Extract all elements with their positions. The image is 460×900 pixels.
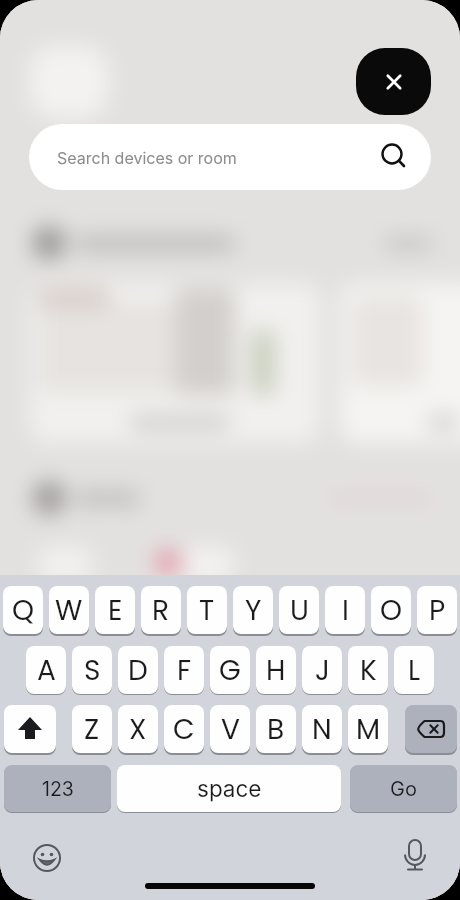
button[interactable] [405,705,457,753]
button[interactable]: Z [72,705,112,753]
button[interactable] [394,835,436,877]
staticText: T [199,591,215,630]
staticText: G [219,651,241,690]
button[interactable]: L [394,646,434,694]
staticText: 123 [42,777,74,801]
button[interactable]: Search devices or room [29,124,431,190]
button[interactable]: Go [350,765,457,812]
button[interactable]: 123 [4,765,111,812]
staticText: O [380,591,403,630]
button[interactable]: J [302,646,342,694]
button[interactable]: X [118,705,158,753]
staticText: H [266,651,286,690]
staticText: C [173,710,195,749]
button[interactable]: N [302,705,342,753]
button[interactable]: U [279,586,319,634]
button[interactable]: W [49,586,89,634]
staticText: R [152,591,170,630]
staticText: F [177,651,192,690]
button[interactable]: Y [233,586,273,634]
staticText: S [84,651,101,690]
button[interactable]: D [118,646,158,694]
staticText: Q [12,591,35,630]
staticText: A [37,651,56,690]
button[interactable]: K [348,646,388,694]
button[interactable]: T [187,586,227,634]
button[interactable]: G [210,646,250,694]
staticText: E [108,591,123,630]
button[interactable]: V [210,705,250,753]
button[interactable]: H [256,646,296,694]
button[interactable] [4,705,56,753]
staticText: V [221,710,240,749]
staticText: B [267,710,285,749]
staticText: Go [390,777,417,801]
staticText: N [312,710,332,749]
staticText: I [342,591,349,630]
staticText: M [356,710,381,749]
staticText: K [360,651,377,690]
button[interactable]: O [371,586,411,634]
button[interactable]: space [117,765,341,812]
staticText: U [290,591,309,630]
button[interactable]: F [164,646,204,694]
button[interactable]: A [26,646,66,694]
staticText: P [429,591,446,630]
staticText: W [55,591,83,630]
staticText: X [129,710,147,749]
staticText: space [197,775,262,802]
button[interactable]: S [72,646,112,694]
button[interactable]: I [325,586,365,634]
button[interactable] [26,837,68,879]
button[interactable]: C [164,705,204,753]
button[interactable] [356,48,431,115]
button[interactable]: Q [3,586,43,634]
staticText: Z [84,710,100,749]
button[interactable]: M [348,705,388,753]
button[interactable]: R [141,586,181,634]
staticText: L [408,651,421,690]
staticText: Y [245,591,262,630]
staticText: J [315,651,330,690]
button[interactable]: P [417,586,457,634]
button[interactable]: B [256,705,296,753]
staticText: D [128,651,148,690]
button[interactable]: E [95,586,135,634]
staticText: Search devices or room [57,148,237,167]
